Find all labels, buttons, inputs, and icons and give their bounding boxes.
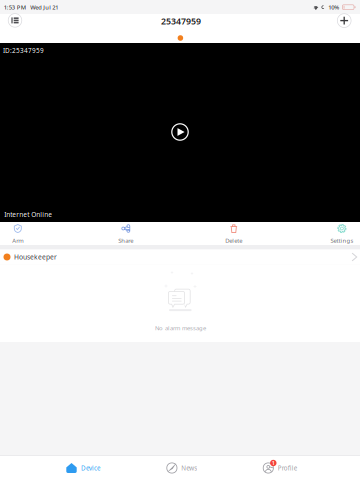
staticText: Delete xyxy=(225,236,242,244)
button[interactable]: Delete xyxy=(211,224,257,244)
staticText: 1:53 PM xyxy=(4,3,26,11)
staticText: 25347959 xyxy=(161,15,201,27)
staticText: Device xyxy=(81,464,101,472)
staticText: Profile xyxy=(278,464,298,472)
staticText: ID:25347959 xyxy=(3,46,44,55)
staticText: Internet Online xyxy=(4,210,52,219)
staticText: Share xyxy=(118,236,133,244)
button[interactable]: Add device xyxy=(332,11,356,31)
button[interactable]: 1 xyxy=(263,457,298,479)
button[interactable]: News xyxy=(167,457,197,479)
button[interactable]: Housekeeper xyxy=(0,249,360,264)
staticText: Settings xyxy=(330,236,353,244)
button[interactable]: Device list xyxy=(3,10,27,30)
button[interactable]: Settings xyxy=(319,224,360,244)
staticText: No alarm message xyxy=(155,324,206,332)
button[interactable]: Share xyxy=(103,224,149,244)
staticText: Arm xyxy=(12,236,23,244)
button[interactable]: Arm xyxy=(0,224,41,244)
staticText: News xyxy=(181,464,197,472)
staticText: Housekeeper xyxy=(14,252,57,262)
staticText: 10% xyxy=(328,3,339,11)
staticText: Wed Jul 21 xyxy=(30,3,58,11)
button[interactable]: Device xyxy=(66,457,101,479)
staticText: 1 xyxy=(272,459,275,467)
